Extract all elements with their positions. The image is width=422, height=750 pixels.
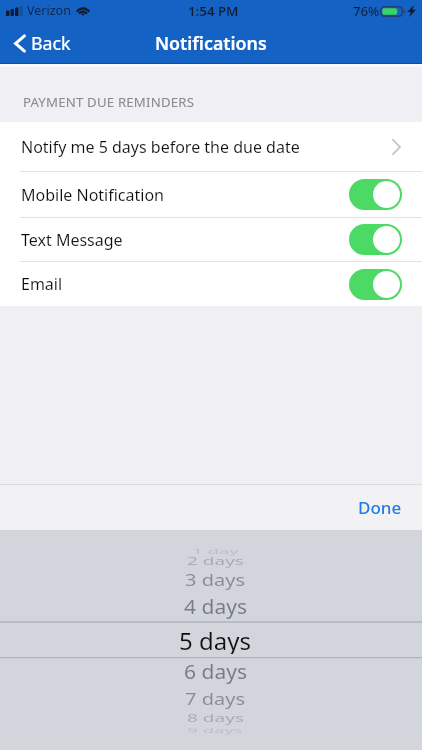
button[interactable]: Email: [0, 262, 422, 306]
staticText: 6 days: [184, 659, 247, 686]
button[interactable]: 6 days: [0, 657, 422, 687]
staticText: Notify me 5 days before the due date: [21, 136, 300, 158]
button[interactable]: 2 days: [0, 546, 422, 576]
staticText: 2 days: [187, 553, 244, 569]
staticText: 8 days: [187, 710, 244, 726]
other: Email toggle: [349, 269, 402, 300]
staticText: Email: [21, 273, 63, 295]
other: Mobile Notification toggle: [349, 179, 402, 210]
staticText: 9 days: [187, 724, 243, 734]
staticText: Verizon: [27, 2, 71, 19]
staticText: 1 day: [192, 545, 239, 555]
button[interactable]: Text Message: [0, 218, 422, 261]
button[interactable]: 3 days: [0, 565, 422, 595]
button[interactable]: 1 day: [0, 535, 422, 565]
staticText: 5 days: [179, 624, 251, 654]
button[interactable]: 4 days: [0, 592, 422, 622]
button[interactable]: Mobile Notification: [0, 172, 422, 217]
button[interactable]: 8 days: [0, 703, 422, 733]
staticText: 1:54 PM: [188, 2, 239, 20]
staticText: 4 days: [184, 594, 247, 621]
staticText: PAYMENT DUE REMINDERS: [23, 93, 195, 111]
staticText: Mobile Notification: [21, 184, 164, 206]
staticText: Notifications: [155, 31, 267, 55]
button[interactable]: Back: [0, 22, 85, 64]
button[interactable]: 5 days: [0, 624, 422, 654]
staticText: Back: [31, 31, 71, 55]
button[interactable]: 9 days: [0, 714, 422, 744]
staticText: Done: [358, 496, 402, 519]
staticText: 7 days: [185, 689, 245, 710]
button[interactable]: Done: [338, 486, 422, 529]
button[interactable]: Notify me 5 days before the due date: [0, 122, 422, 171]
staticText: 3 days: [185, 570, 245, 591]
other: Text Message toggle: [349, 224, 402, 255]
staticText: 76%: [353, 2, 380, 20]
button[interactable]: 7 days: [0, 684, 422, 714]
staticText: Text Message: [21, 229, 123, 251]
